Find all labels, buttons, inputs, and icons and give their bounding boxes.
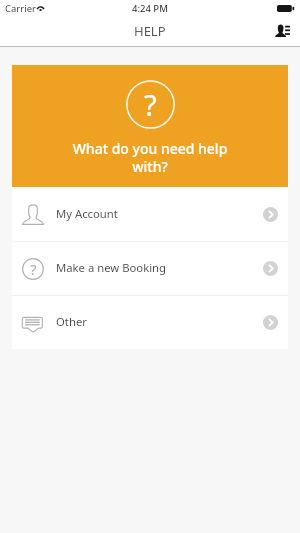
staticText: What do you need help with? xyxy=(67,139,233,176)
staticText: ? xyxy=(30,259,37,279)
staticText: Other xyxy=(56,314,87,329)
staticText: Make a new Booking xyxy=(56,260,167,275)
button[interactable]: ? xyxy=(12,242,288,295)
button[interactable]: Other xyxy=(12,296,288,349)
button[interactable]: Contacts xyxy=(270,18,294,42)
staticText: My Account xyxy=(56,206,118,221)
staticText: ? xyxy=(144,85,157,124)
staticText: Carrier xyxy=(5,2,36,15)
staticText: HELP xyxy=(134,22,166,40)
button[interactable]: What do you need help with? xyxy=(12,65,288,187)
button[interactable]: My Account xyxy=(12,187,288,241)
staticText: 4:24 PM xyxy=(132,2,168,15)
